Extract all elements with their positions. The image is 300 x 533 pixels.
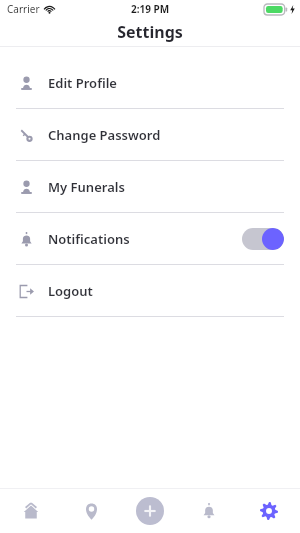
button[interactable]: Notifications (0, 213, 300, 264)
button[interactable]: My Funerals (0, 161, 300, 212)
button[interactable]: Settings (241, 489, 297, 533)
button[interactable]: Home (3, 489, 59, 533)
staticText: 2:19 PM (131, 2, 170, 16)
button[interactable]: Change Password (0, 109, 300, 160)
button[interactable]: Toggle notifications (242, 228, 284, 250)
staticText: Notifications (48, 230, 130, 248)
button[interactable]: Edit Profile (0, 57, 300, 108)
staticText: Settings (117, 21, 183, 43)
button[interactable]: Locations (63, 489, 119, 533)
staticText: Logout (48, 282, 93, 300)
staticText: My Funerals (48, 178, 125, 196)
button[interactable]: Notifications (181, 489, 237, 533)
staticText: Change Password (48, 126, 161, 144)
button[interactable]: Logout (0, 265, 300, 316)
staticText: Carrier (7, 2, 40, 16)
staticText: Edit Profile (48, 74, 117, 92)
button[interactable]: Add (122, 489, 178, 533)
